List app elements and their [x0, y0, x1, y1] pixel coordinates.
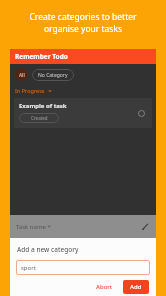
staticText: Example of task [19, 102, 67, 110]
button[interactable]: Task name * [10, 215, 156, 238]
staticText: Created [31, 115, 48, 121]
staticText: Remember Todo [15, 52, 68, 61]
other: Mark task complete [138, 110, 145, 117]
staticText: All [19, 72, 25, 78]
staticText: Abort [96, 283, 113, 291]
other: Edit task name [142, 223, 149, 230]
button[interactable]: No Category [32, 69, 74, 81]
button[interactable]: Abort [90, 280, 119, 294]
button[interactable]: In Progress [15, 87, 52, 94]
staticText: Create categories to better organise you… [8, 11, 158, 35]
staticText: Task name * [16, 223, 51, 231]
button[interactable]: Add [123, 280, 149, 294]
staticText: Add a new category [17, 245, 79, 254]
button[interactable]: All [15, 68, 28, 81]
button[interactable]: sport [16, 260, 150, 275]
button[interactable]: Example of task [14, 98, 152, 128]
staticText: In Progress [15, 87, 45, 94]
staticText: No Category [38, 72, 68, 79]
staticText: Add [130, 283, 142, 291]
staticText: sport [21, 264, 36, 272]
